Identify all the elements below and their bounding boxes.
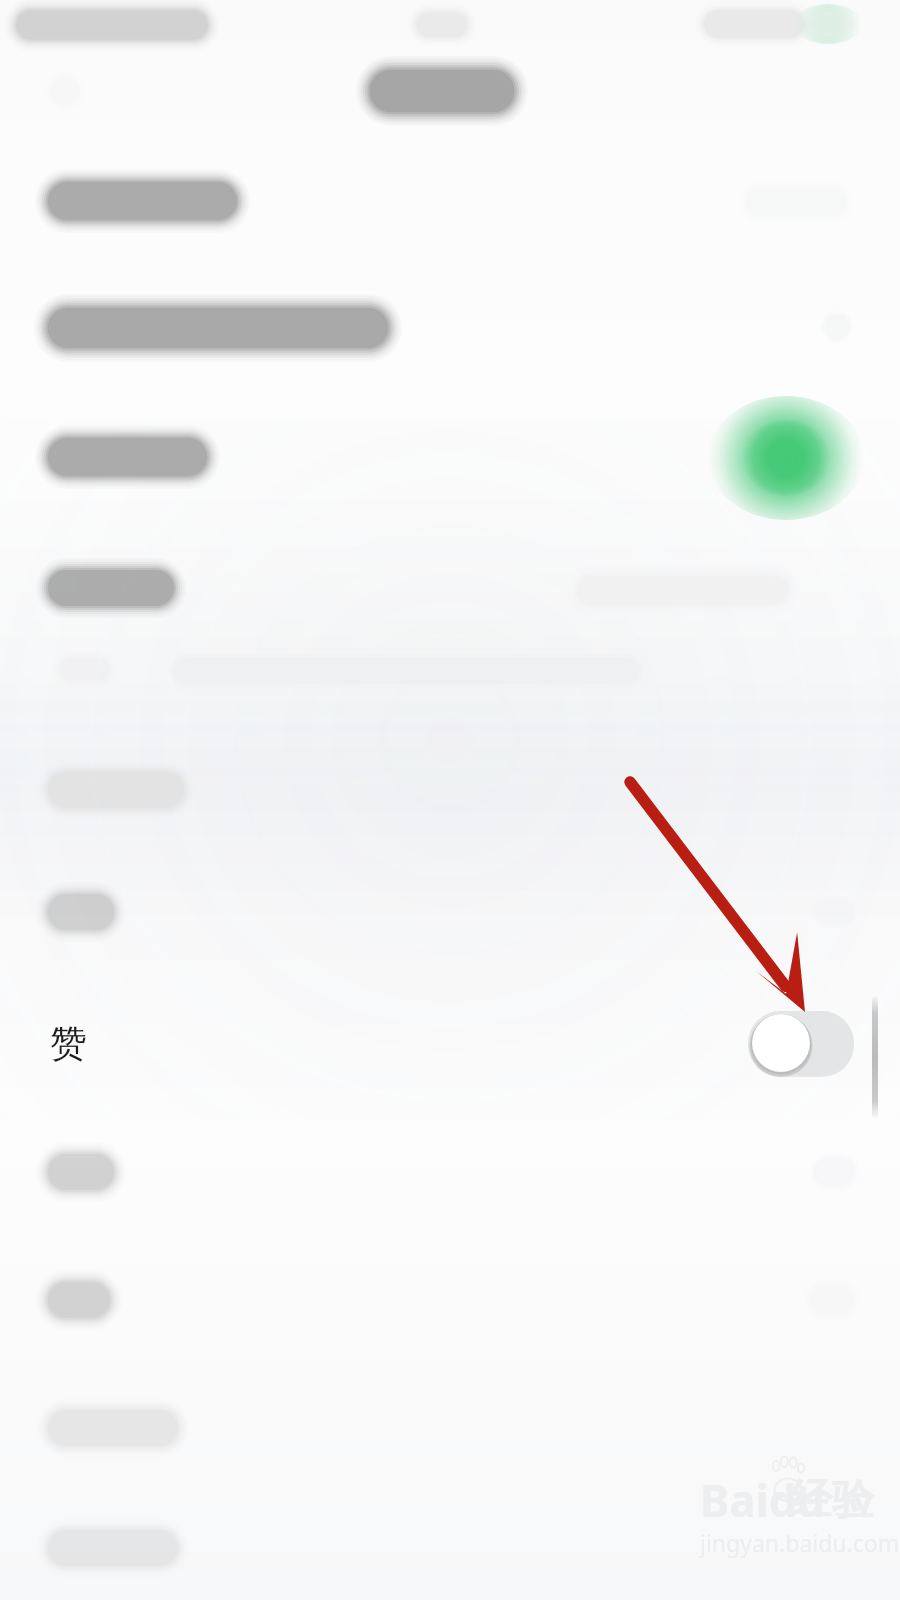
button[interactable] (0, 992, 900, 1096)
button[interactable] (0, 1500, 900, 1596)
button[interactable] (0, 1252, 900, 1352)
button[interactable] (0, 742, 900, 842)
button[interactable] (0, 1380, 900, 1480)
button[interactable] (0, 540, 900, 640)
button[interactable] (0, 408, 900, 508)
button[interactable] (0, 280, 900, 380)
button[interactable] (0, 1124, 900, 1224)
button[interactable] (0, 864, 900, 964)
button[interactable] (0, 152, 900, 252)
